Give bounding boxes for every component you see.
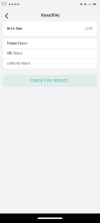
staticText: HMI Version <box>7 52 22 55</box>
staticText: 10:23 <box>1 3 6 6</box>
staticText: About Bike <box>40 12 59 17</box>
staticText: CHECK FOR UPDATES <box>31 79 69 83</box>
staticText: Controller Version <box>7 62 30 65</box>
staticText: Firmware Version <box>7 42 27 45</box>
staticText: Model Name <box>7 27 22 31</box>
button[interactable]: Back <box>0 8 13 21</box>
staticText: LA3138 <box>85 27 92 30</box>
button[interactable]: CHECK FOR UPDATES <box>0 75 100 87</box>
